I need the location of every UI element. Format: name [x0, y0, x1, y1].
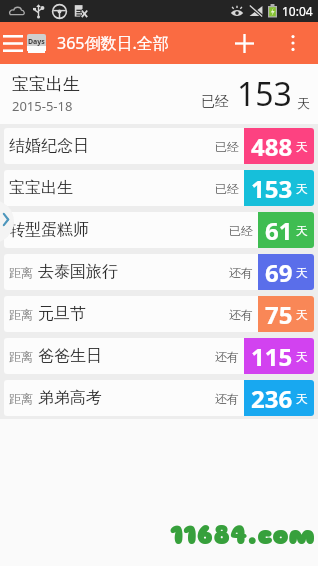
staticText: 75 — [265, 298, 293, 331]
staticText: 2015-5-18 — [12, 97, 73, 115]
staticText: 还有 — [229, 265, 253, 280]
button[interactable]: 结婚纪念日 — [4, 128, 314, 164]
button[interactable]: 转型蛋糕师 — [4, 212, 314, 248]
staticText: 10:04 — [282, 3, 313, 19]
staticText: 153 — [251, 172, 293, 205]
staticText: 69 — [265, 256, 293, 289]
staticText: 236 — [251, 382, 293, 415]
staticText: 天 — [296, 349, 308, 364]
staticText: 11684.com — [170, 518, 316, 552]
staticText: 宝宝出生 — [9, 178, 73, 198]
button[interactable]: 距离 — [4, 296, 314, 332]
staticText: 天 — [296, 265, 308, 280]
staticText: 爸爸生日 — [38, 346, 102, 366]
staticText: 已经 — [229, 223, 253, 238]
staticText: 365倒数日.全部 — [57, 32, 169, 54]
button[interactable]: Add — [222, 22, 267, 64]
staticText: 天 — [296, 223, 308, 238]
staticText: 天 — [296, 139, 308, 154]
staticText: 结婚纪念日 — [9, 136, 89, 156]
button[interactable]: 距离 — [4, 380, 314, 416]
button[interactable]: 宝宝出生 — [4, 170, 314, 206]
staticText: 已经 — [201, 93, 229, 111]
staticText: 转型蛋糕师 — [9, 220, 89, 240]
staticText: 已经 — [215, 139, 239, 154]
staticText: 天 — [296, 307, 308, 322]
button[interactable]: 距离 — [4, 254, 314, 290]
button[interactable]: 距离 — [4, 338, 314, 374]
button[interactable]: Menu — [0, 22, 26, 64]
staticText: 距离 — [9, 265, 33, 280]
staticText: 去泰国旅行 — [38, 262, 118, 282]
staticText: 还有 — [229, 307, 253, 322]
staticText: 天 — [296, 181, 308, 196]
staticText: 115 — [251, 340, 293, 373]
staticText: 61 — [265, 214, 293, 247]
staticText: 元旦节 — [38, 304, 86, 324]
staticText: Days — [28, 37, 45, 46]
staticText: 已经 — [215, 181, 239, 196]
staticText: 天 — [297, 95, 310, 111]
staticText: 宝宝出生 — [12, 74, 80, 95]
staticText: 153 — [237, 72, 292, 116]
staticText: 距离 — [9, 349, 33, 364]
staticText: 距离 — [9, 307, 33, 322]
staticText: 还有 — [215, 391, 239, 406]
staticText: 还有 — [215, 349, 239, 364]
staticText: 488 — [251, 130, 293, 163]
staticText: 天 — [296, 391, 308, 406]
staticText: 距离 — [9, 391, 33, 406]
staticText: 弟弟高考 — [38, 388, 102, 408]
button[interactable]: Open drawer — [0, 200, 14, 243]
button[interactable]: More options — [267, 22, 318, 64]
